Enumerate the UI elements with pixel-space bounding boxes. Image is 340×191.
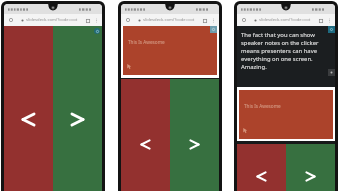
- button[interactable]: Fullscreen: [328, 26, 335, 33]
- other: Next slide: [305, 171, 316, 182]
- other: Previous slide: [21, 112, 36, 127]
- button[interactable]: Next slide: [53, 26, 102, 191]
- other: Secure: [254, 19, 257, 22]
- button[interactable]: Tabs: [316, 16, 325, 25]
- other: Next slide: [70, 112, 85, 127]
- button[interactable]: Next slide: [170, 79, 219, 191]
- other: Secure: [138, 19, 141, 22]
- button[interactable]: Tabs: [200, 16, 209, 25]
- button[interactable]: Previous slide: [237, 144, 286, 191]
- button[interactable]: Next slide: [286, 144, 335, 191]
- button[interactable]: More options: [325, 16, 333, 24]
- other: Draw: [242, 127, 249, 134]
- staticText: slidesdeck.com/?code=cot: [26, 17, 78, 23]
- staticText: This Is Awesome: [128, 39, 165, 45]
- other: Next slide: [189, 139, 200, 150]
- button[interactable]: Reload: [123, 15, 133, 25]
- other: Previous slide: [256, 171, 267, 182]
- button[interactable]: Settings: [328, 69, 335, 76]
- staticText: slidesdeck.com/?code=cot: [259, 17, 311, 23]
- button[interactable]: Reload: [239, 15, 249, 25]
- button[interactable]: Present: [94, 28, 100, 34]
- staticText: This Is Awesome: [244, 103, 281, 109]
- button[interactable]: Previous slide: [121, 79, 170, 191]
- staticText: slidesdeck.com/?code=cot: [143, 17, 195, 23]
- staticText: The fact that you can show speaker notes…: [241, 31, 326, 71]
- button[interactable]: Previous slide: [4, 26, 53, 191]
- other: Draw: [126, 63, 133, 70]
- button[interactable]: More options: [92, 16, 100, 24]
- other: Previous slide: [140, 139, 151, 150]
- button[interactable]: More options: [209, 16, 217, 24]
- button[interactable]: Fullscreen: [210, 26, 217, 33]
- other: Secure: [21, 19, 24, 22]
- button[interactable]: Tabs: [83, 16, 92, 25]
- button[interactable]: Reload: [6, 15, 16, 25]
